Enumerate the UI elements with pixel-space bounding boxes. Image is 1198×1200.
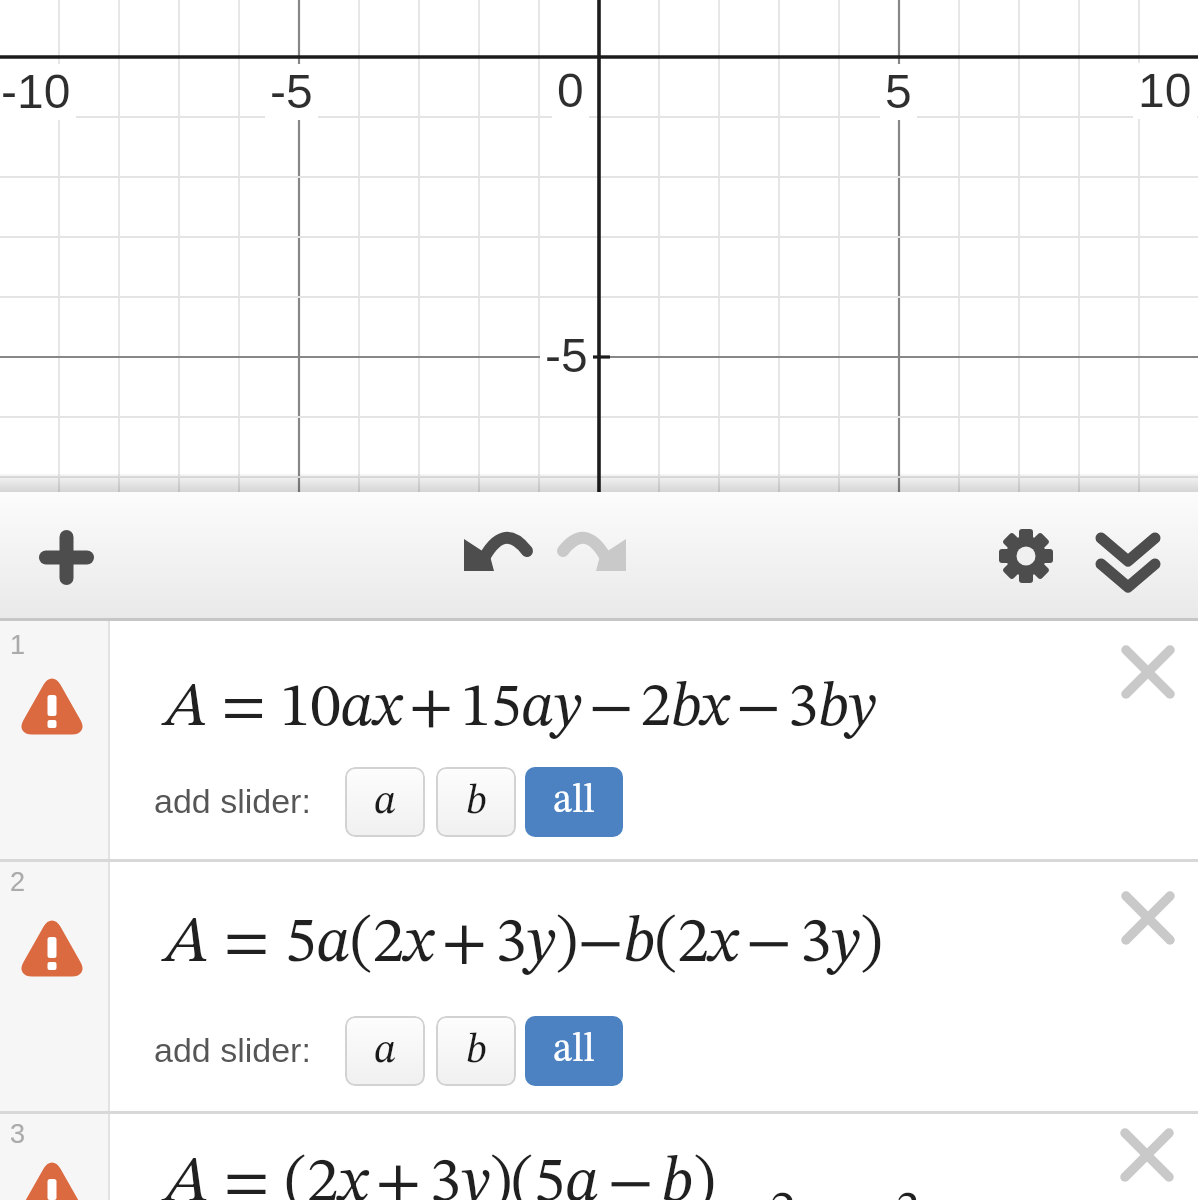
button[interactable] xyxy=(110,1114,1198,1200)
staticText: A = 5a(2x + 3y)−b(2x − 3y) xyxy=(165,912,883,976)
button[interactable]: all xyxy=(525,1016,623,1086)
staticText: A = 10ax + 15ay − 2bx − 3by xyxy=(165,678,876,740)
staticText: all xyxy=(553,1031,595,1071)
button[interactable] xyxy=(1097,528,1159,590)
button[interactable]: all xyxy=(525,767,623,837)
button[interactable]: a xyxy=(345,767,425,837)
button[interactable]: b xyxy=(436,767,516,837)
button[interactable] xyxy=(110,621,1198,860)
button[interactable] xyxy=(1122,646,1174,698)
button[interactable]: a xyxy=(345,1016,425,1086)
staticText: a xyxy=(374,1030,397,1072)
button[interactable] xyxy=(562,524,634,584)
staticText: 3 xyxy=(10,1119,26,1149)
staticText: all xyxy=(553,782,595,822)
button[interactable]: b xyxy=(436,1016,516,1086)
staticText: 3y xyxy=(895,1186,944,1200)
staticText: add slider: xyxy=(154,782,311,820)
button[interactable] xyxy=(1122,892,1174,944)
button[interactable] xyxy=(996,526,1056,586)
staticText: 2x xyxy=(770,1186,820,1200)
staticText: a xyxy=(374,781,397,823)
button[interactable] xyxy=(39,530,94,585)
staticText: 5 xyxy=(885,65,912,119)
staticText: 2 xyxy=(10,867,26,897)
staticText: -5 xyxy=(270,65,313,119)
button[interactable] xyxy=(1121,1129,1173,1181)
staticText: 0 xyxy=(557,64,584,118)
staticText: b xyxy=(466,1030,487,1072)
staticText: -10 xyxy=(1,65,71,119)
staticText: -5 xyxy=(545,329,588,383)
button[interactable] xyxy=(110,862,1198,1112)
staticText: b xyxy=(466,781,487,823)
staticText: 10 xyxy=(1138,64,1192,118)
staticText: A = (2x + 3y)(5a − b) xyxy=(165,1152,716,1200)
staticText: add slider: xyxy=(154,1031,311,1069)
button[interactable] xyxy=(456,524,528,584)
staticText: 1 xyxy=(10,630,26,660)
